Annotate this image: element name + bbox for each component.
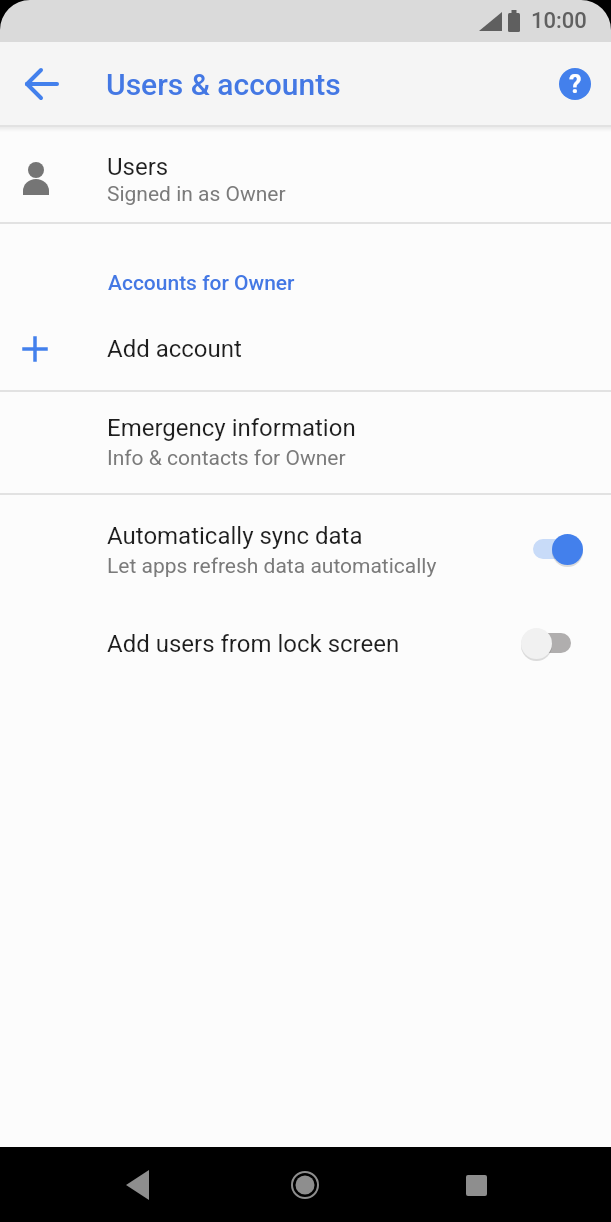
staticText: Accounts for Owner	[108, 271, 295, 296]
button[interactable]	[521, 627, 583, 659]
button[interactable]	[450, 1158, 504, 1212]
staticText: 10:00	[531, 8, 587, 34]
staticText: Info & contacts for Owner	[107, 446, 346, 471]
button[interactable]	[110, 1169, 164, 1201]
button[interactable]: Automatically sync data	[0, 495, 611, 600]
button[interactable]	[14, 56, 70, 112]
button[interactable]	[521, 533, 583, 565]
staticText: Users	[107, 153, 169, 181]
button[interactable]: ?	[559, 68, 591, 100]
staticText: Emergency information	[107, 414, 356, 442]
staticText: Signed in as Owner	[107, 182, 286, 207]
button[interactable]	[278, 1158, 332, 1212]
staticText: Add account	[107, 335, 242, 363]
staticText: Let apps refresh data automatically	[107, 554, 437, 579]
button[interactable]: Emergency information	[0, 392, 611, 493]
button[interactable]: Add users from lock screen	[0, 600, 611, 688]
button[interactable]: Users	[0, 127, 611, 222]
staticText: Users & accounts	[106, 67, 341, 102]
button[interactable]: Add account	[0, 307, 611, 390]
staticText: Add users from lock screen	[107, 630, 400, 658]
staticText: Automatically sync data	[107, 522, 363, 550]
staticText: ?	[569, 70, 582, 99]
